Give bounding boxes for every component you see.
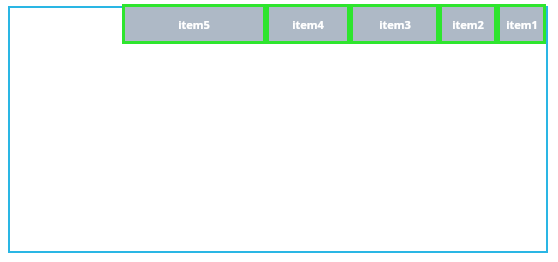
- staticText: item5: [178, 17, 210, 32]
- button[interactable]: item4: [266, 4, 350, 44]
- staticText: item3: [379, 17, 411, 32]
- staticText: item1: [506, 17, 538, 32]
- button[interactable]: item3: [350, 4, 439, 44]
- button[interactable]: item5: [122, 4, 266, 44]
- button[interactable]: item2: [439, 4, 497, 44]
- staticText: item2: [452, 17, 484, 32]
- button[interactable]: item1: [497, 4, 546, 44]
- staticText: item4: [292, 17, 324, 32]
